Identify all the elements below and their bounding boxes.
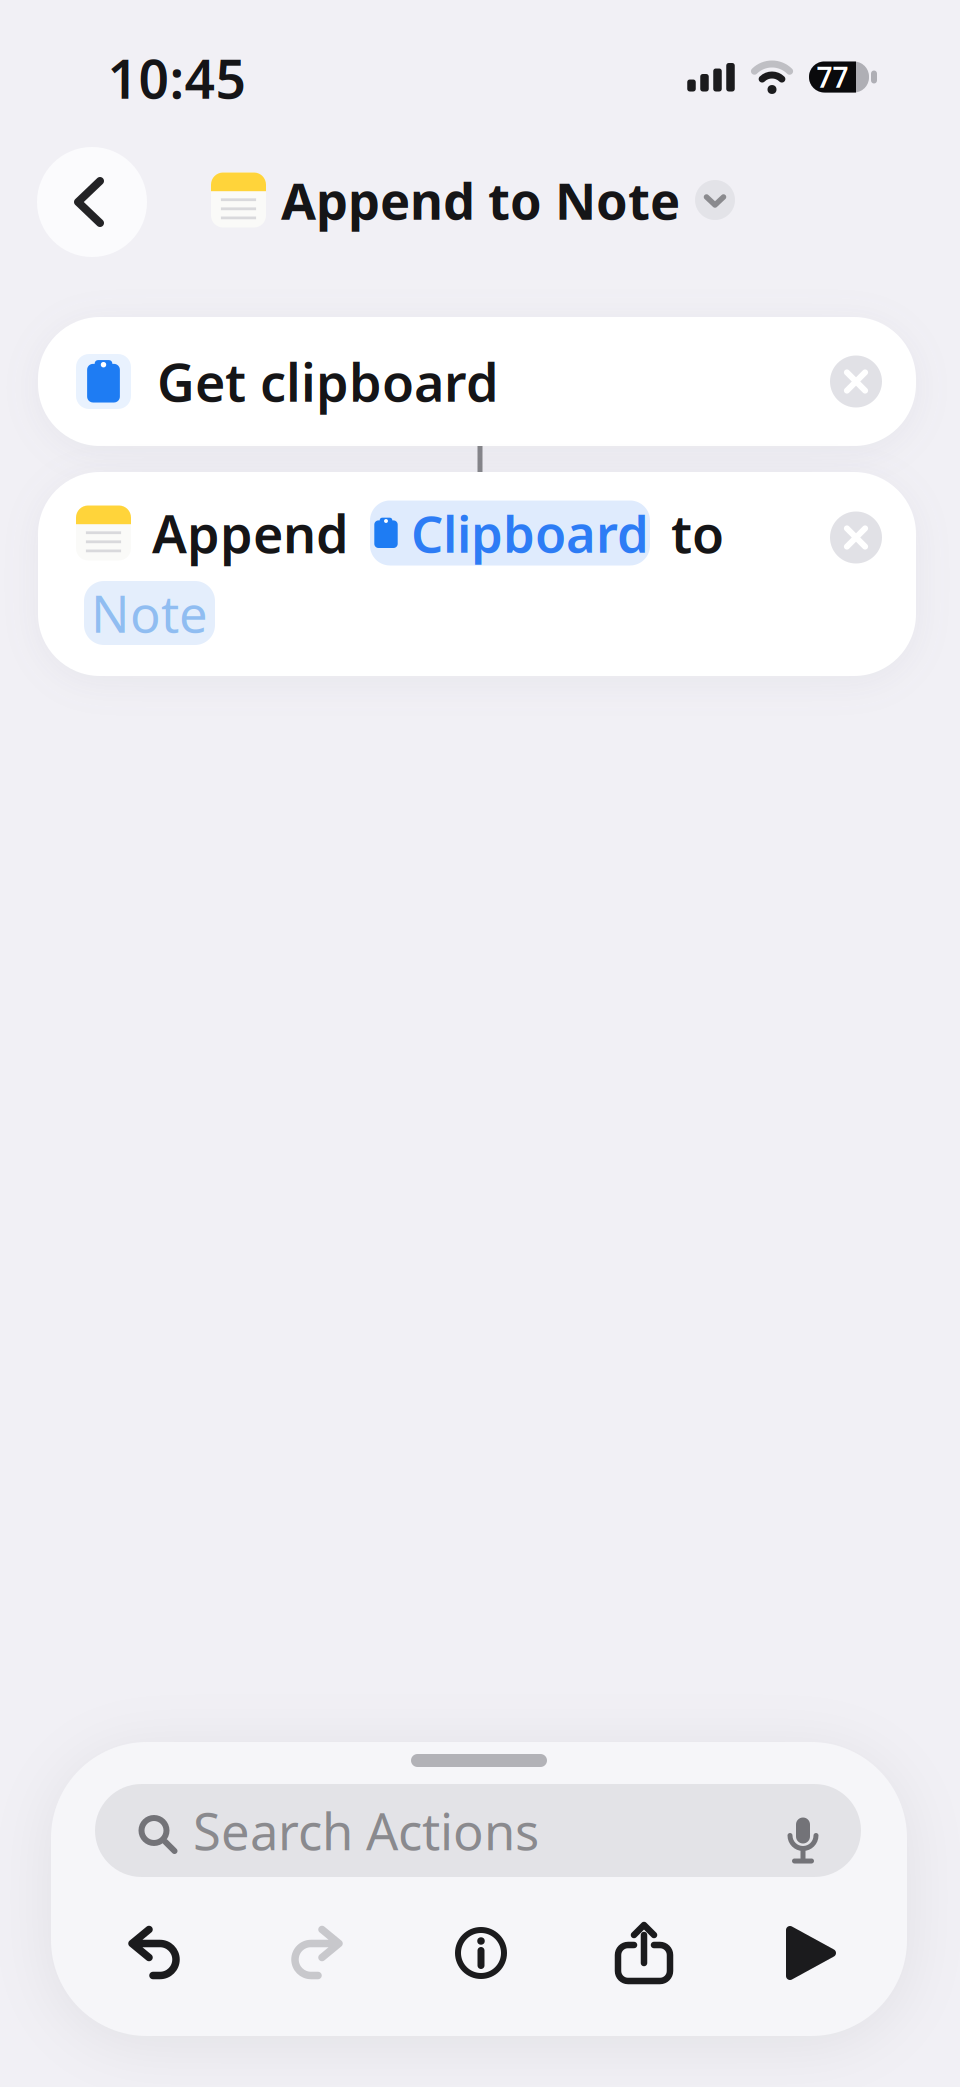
staticText: 10:45 — [107, 43, 246, 113]
button[interactable]: Shortcut title menu — [211, 166, 735, 234]
button[interactable]: Redo — [292, 1928, 342, 1977]
button[interactable]: Delete action — [830, 511, 882, 563]
staticText: Append — [152, 498, 349, 568]
button[interactable]: Run shortcut — [786, 1926, 836, 1980]
button[interactable]: Append — [38, 472, 916, 676]
button[interactable]: Clipboard variable — [370, 500, 650, 565]
button[interactable]: Shortcut details — [455, 1927, 507, 1979]
button[interactable]: Delete action — [830, 355, 882, 407]
staticText: 77 — [816, 58, 848, 96]
staticText: to — [671, 498, 724, 568]
button[interactable]: Undo — [129, 1928, 179, 1977]
staticText: Clipboard — [411, 499, 649, 567]
button[interactable]: Share — [618, 1925, 670, 1981]
staticText: Get clipboard — [157, 347, 499, 416]
staticText: Note — [91, 579, 208, 647]
button[interactable]: Back — [37, 147, 147, 257]
button[interactable]: Search Actions — [95, 1784, 861, 1877]
button[interactable]: Choose Note — [84, 581, 215, 645]
staticText: Append to Note — [281, 166, 680, 234]
staticText: Search Actions — [193, 1797, 539, 1864]
button[interactable]: Get clipboard — [38, 317, 916, 446]
